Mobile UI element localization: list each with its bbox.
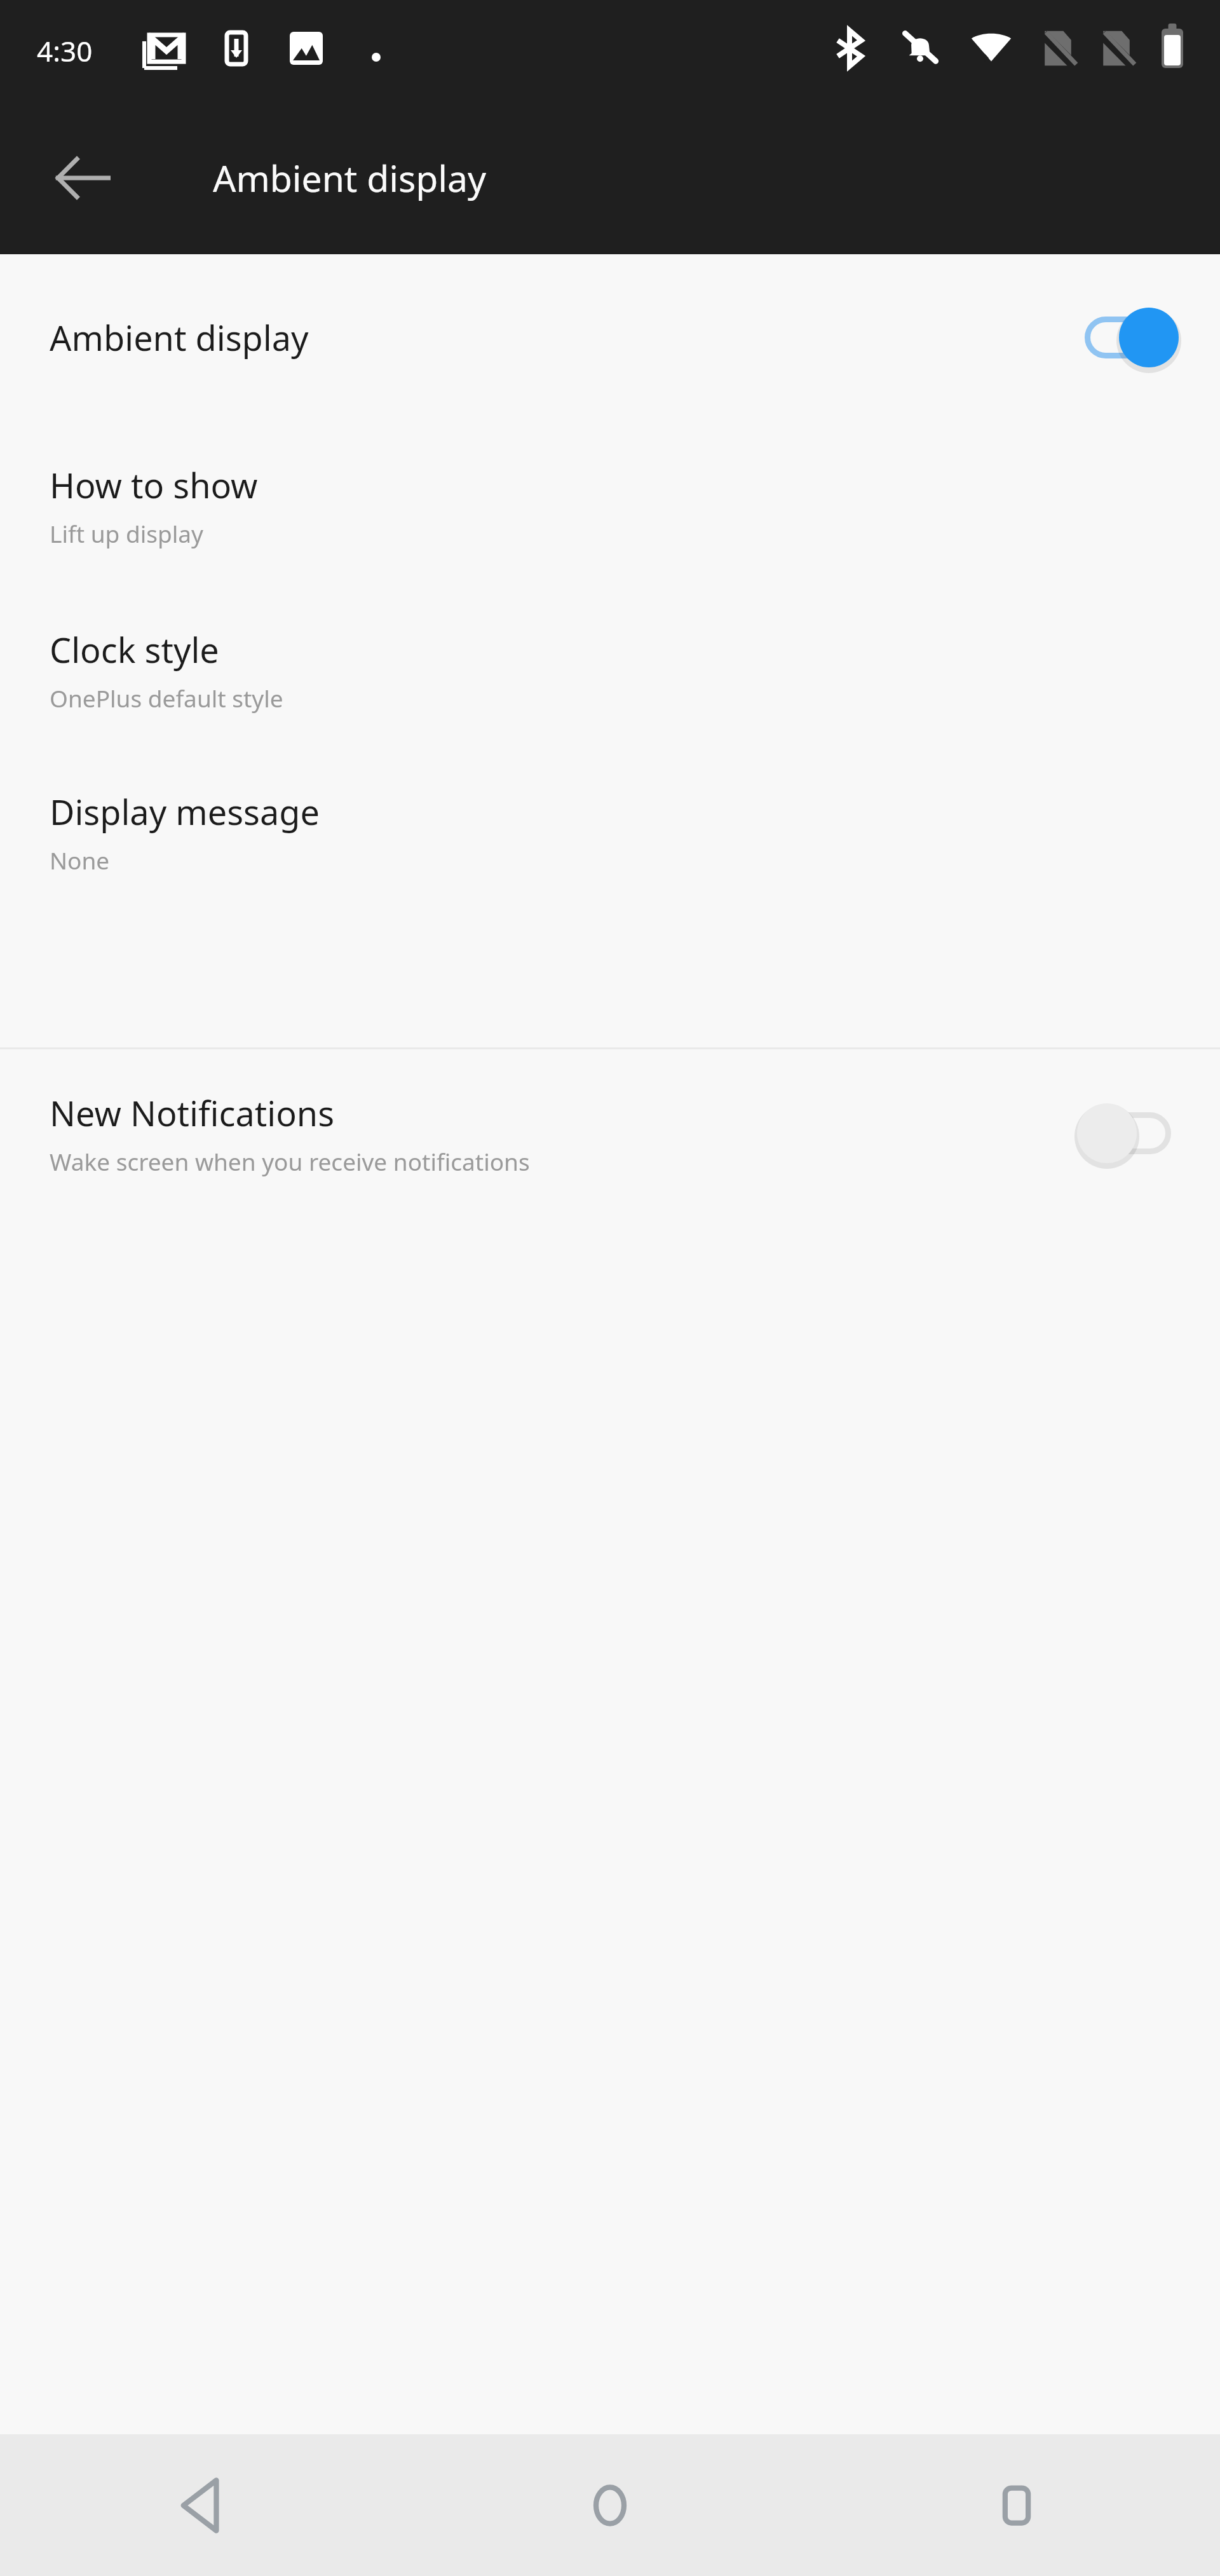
button[interactable]: Recent apps [813, 2434, 1220, 2576]
button[interactable]: Home [407, 2434, 813, 2576]
button[interactable]: New Notifications [0, 1049, 1220, 1217]
button[interactable]: Display message [0, 750, 1220, 913]
button[interactable]: On [1074, 296, 1182, 379]
staticText: Clock style [50, 626, 219, 673]
button[interactable]: Clock style [0, 589, 1220, 750]
button[interactable]: How to show [0, 421, 1220, 589]
button[interactable]: Navigate up [37, 132, 128, 224]
staticText: Display message [50, 788, 320, 835]
staticText: OnePlus default style [50, 682, 283, 714]
staticText: Ambient display [50, 314, 309, 361]
button[interactable]: Ambient display [0, 254, 1220, 421]
staticText: Wake screen when you receive notificatio… [50, 1145, 530, 1177]
button[interactable]: Off [1074, 1092, 1182, 1175]
staticText: 4:30 [37, 32, 93, 70]
staticText: How to show [50, 461, 258, 508]
staticText: New Notifications [50, 1089, 335, 1136]
staticText: None [50, 844, 110, 876]
staticText: Lift up display [50, 517, 203, 549]
button[interactable]: Back [0, 2434, 407, 2576]
staticText: Ambient display [213, 153, 487, 203]
